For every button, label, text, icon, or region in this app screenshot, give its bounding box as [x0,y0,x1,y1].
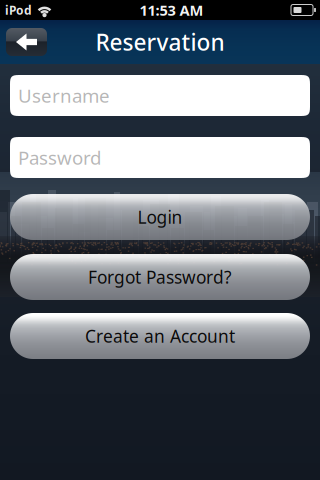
staticText: Login [137,205,182,228]
button[interactable]: Password [10,137,310,178]
staticText: Password [18,145,101,170]
staticText: Reservation [95,27,224,57]
button[interactable]: Back [6,28,47,56]
button[interactable]: Create an Account [10,313,310,359]
button[interactable]: Login [10,194,310,240]
staticText: 11:53 AM [139,0,203,20]
staticText: Forgot Password? [88,265,232,288]
button[interactable]: Forgot Password? [10,254,310,300]
staticText: Create an Account [85,324,235,347]
staticText: iPod [5,2,32,18]
staticText: Username [18,83,110,108]
button[interactable]: Username [10,75,310,116]
